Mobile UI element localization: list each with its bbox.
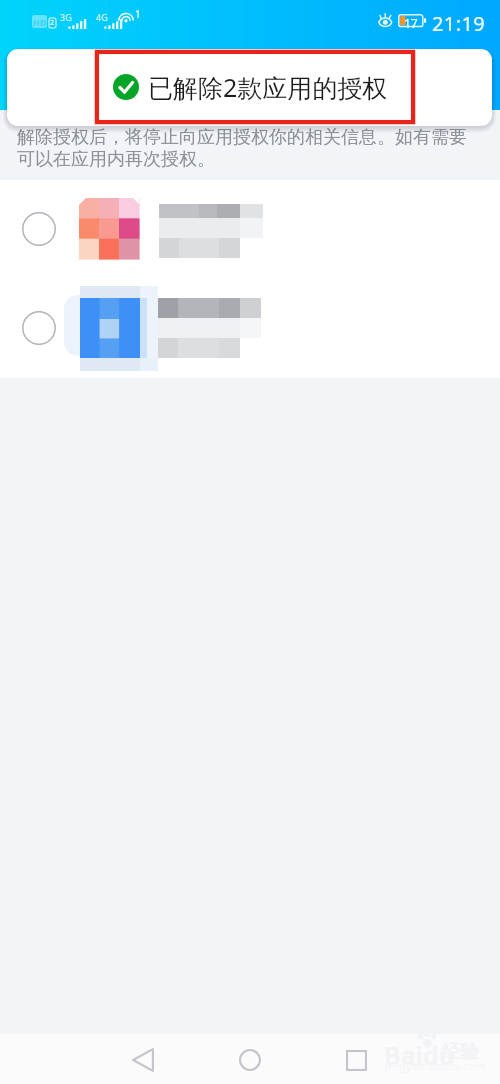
button[interactable]: Home <box>225 1035 275 1084</box>
staticText: 解除授权后，将停止向应用授权你的相关信息。如有需要可以在应用内再次授权。 <box>17 126 470 171</box>
staticText: 4G <box>96 11 108 23</box>
staticText: 3G <box>60 11 72 23</box>
staticText: jingyan.baidu.com <box>385 1058 487 1073</box>
staticText: 已解除2款应用的授权 <box>148 70 388 104</box>
staticText: 经验 <box>441 1040 479 1064</box>
button[interactable] <box>0 279 500 378</box>
button[interactable]: 已解除2款应用的授权 <box>7 49 492 126</box>
button[interactable] <box>0 180 500 279</box>
staticText: 17 <box>404 15 418 31</box>
staticText: Baidu <box>384 1038 456 1072</box>
staticText: 1 <box>135 7 141 21</box>
staticText: HD <box>33 16 47 28</box>
staticText: 21:19 <box>432 10 486 37</box>
button[interactable]: Recents <box>331 1035 381 1084</box>
staticText: 2 <box>50 18 55 28</box>
button[interactable]: Back <box>118 1035 168 1084</box>
